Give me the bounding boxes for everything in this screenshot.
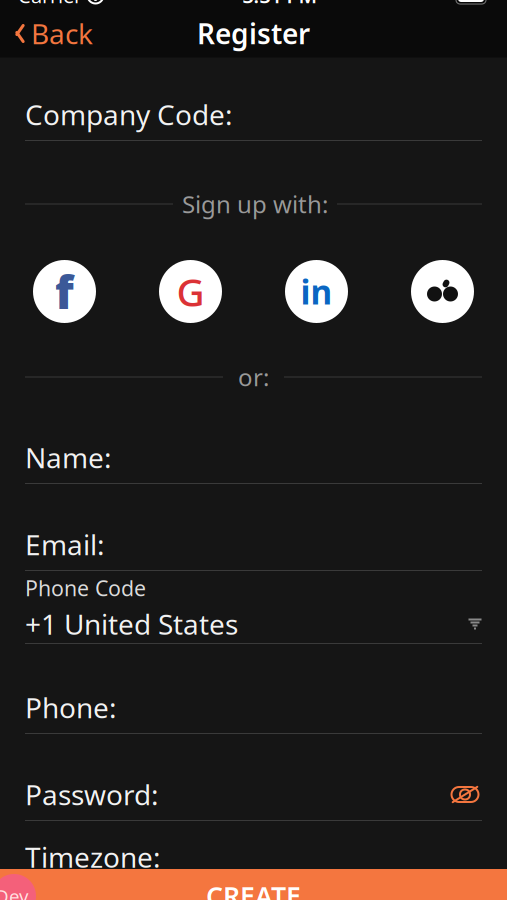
staticText: Dev. <box>0 884 33 900</box>
staticText: Sign up with: <box>182 188 328 220</box>
staticText: Company Code: <box>25 96 233 133</box>
button[interactable]: Sign up with Google <box>159 260 222 323</box>
staticText: Register <box>197 15 310 52</box>
staticText: +1 United States <box>25 605 238 643</box>
staticText: Name: <box>25 439 112 476</box>
staticText: CREATE <box>206 878 301 900</box>
staticText: or: <box>238 361 269 393</box>
staticText: G <box>176 266 204 317</box>
button[interactable]: Sign up with Apple <box>411 260 474 323</box>
button[interactable]: Back <box>0 11 107 55</box>
button[interactable]: Sign up with Facebook <box>33 260 96 323</box>
staticText: Back <box>31 15 93 52</box>
staticText: f <box>55 261 74 322</box>
button[interactable]: Phone Code <box>0 571 507 644</box>
staticText: 3:31 PM <box>242 0 317 9</box>
staticText: Phone: <box>25 689 117 726</box>
staticText: Carrier <box>18 0 82 9</box>
button[interactable]: Show password <box>448 781 482 807</box>
staticText: Password: <box>25 776 159 813</box>
staticText: in <box>300 269 332 314</box>
staticText: Timezone: <box>25 838 161 876</box>
button[interactable]: CREATE <box>0 869 507 900</box>
staticText: Phone Code <box>25 574 146 602</box>
staticText: Email: <box>25 526 105 563</box>
button[interactable]: Sign up with LinkedIn <box>285 260 348 323</box>
